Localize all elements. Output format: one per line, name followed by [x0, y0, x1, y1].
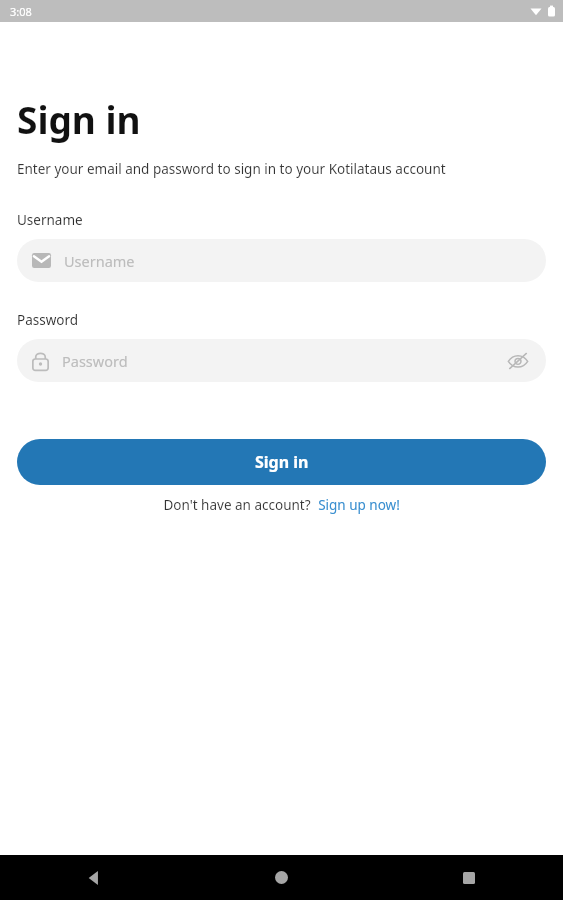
staticText: Sign in	[255, 451, 309, 473]
button[interactable]: Sign in	[17, 439, 546, 485]
staticText: Sign in	[17, 94, 141, 144]
staticText: Password	[17, 311, 79, 329]
staticText: Username	[64, 251, 135, 271]
button[interactable]: Recent apps	[375, 855, 563, 900]
button[interactable]: Username	[17, 239, 546, 282]
staticText: Password	[62, 351, 128, 371]
button[interactable]: Sign up now!	[318, 496, 400, 514]
staticText: Enter your email and password to sign in…	[17, 160, 446, 178]
staticText: 3:08	[10, 4, 32, 19]
button[interactable]: Show password	[505, 348, 531, 374]
button[interactable]: Home	[187, 855, 375, 900]
button[interactable]: Back	[0, 855, 187, 900]
staticText: Username	[17, 211, 83, 229]
staticText: Sign up now!	[318, 496, 400, 514]
staticText: Don't have an account?	[163, 496, 311, 514]
button[interactable]: Password	[17, 339, 546, 382]
